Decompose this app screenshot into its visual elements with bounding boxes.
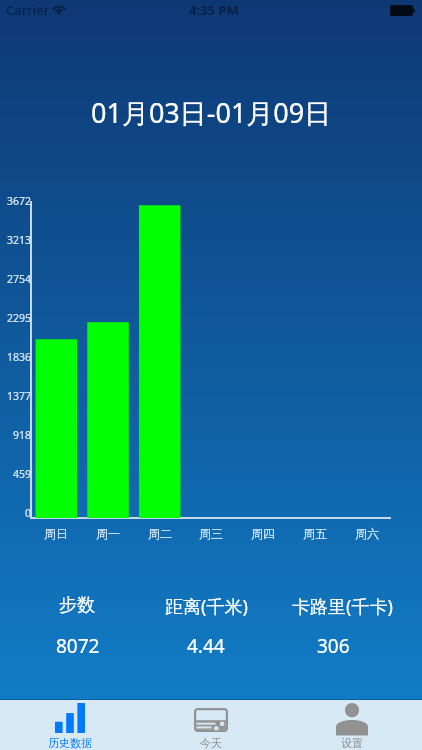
- staticText: 8072: [56, 633, 100, 659]
- button[interactable]: 历史数据: [0, 700, 140, 750]
- staticText: 2754: [6, 272, 31, 286]
- staticText: 周四: [251, 526, 275, 541]
- staticText: 今天: [200, 736, 222, 750]
- staticText: 周三: [199, 526, 223, 541]
- staticText: 4.44: [187, 633, 225, 659]
- staticText: 2295: [6, 311, 31, 325]
- staticText: 周六: [355, 526, 379, 541]
- staticText: 周一: [96, 526, 120, 541]
- staticText: 设置: [341, 736, 363, 750]
- staticText: 卡路里(千卡): [292, 594, 393, 619]
- staticText: 步数: [59, 594, 95, 617]
- staticText: 周二: [148, 526, 172, 541]
- staticText: 1836: [6, 350, 31, 364]
- staticText: 4:35 PM: [189, 1, 239, 19]
- staticText: 01月03日-01月09日: [91, 94, 332, 131]
- staticText: 历史数据: [48, 736, 92, 750]
- staticText: Carrier: [6, 1, 50, 19]
- staticText: 周五: [303, 526, 327, 541]
- staticText: 459: [12, 467, 31, 481]
- staticText: 918: [12, 428, 31, 442]
- button[interactable]: 今天: [140, 700, 281, 750]
- staticText: 306: [317, 633, 350, 659]
- staticText: 1377: [6, 389, 31, 403]
- staticText: 距离(千米): [165, 594, 248, 619]
- button[interactable]: 设置: [281, 700, 422, 750]
- staticText: 3213: [6, 233, 31, 247]
- staticText: 0: [24, 506, 31, 520]
- staticText: 3672: [6, 194, 31, 208]
- staticText: 周日: [44, 526, 68, 541]
